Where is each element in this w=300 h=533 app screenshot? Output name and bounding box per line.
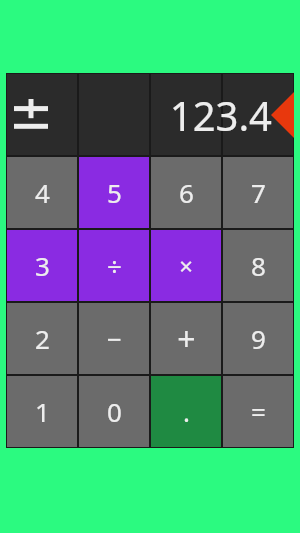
staticText: 6 [179,175,194,210]
staticText: 4 [35,175,50,210]
button[interactable]: 2 [7,303,77,374]
button[interactable]: + [151,303,221,374]
button[interactable]: 6 [151,157,221,228]
staticText: 123.4 [169,88,272,142]
staticText: 7 [251,175,266,210]
button[interactable]: 5 [79,157,149,228]
staticText: − [107,321,122,356]
button[interactable]: × [151,230,221,301]
staticText: × [179,249,193,282]
button[interactable]: 4 [7,157,77,228]
staticText: = [251,394,266,429]
button[interactable]: Backspace [271,92,294,138]
staticText: 1 [35,394,50,429]
staticText: 2 [35,321,50,356]
button[interactable]: = [223,376,293,447]
button[interactable]: 0 [79,376,149,447]
staticText: . [183,394,190,429]
button[interactable]: − [79,303,149,374]
button[interactable]: 3 [7,230,77,301]
button[interactable]: Plus minus sign toggle [6,74,78,155]
button[interactable]: 8 [223,230,293,301]
staticText: 8 [251,248,266,283]
button[interactable]: ÷ [79,230,149,301]
staticText: + [177,317,196,361]
button[interactable]: 9 [223,303,293,374]
staticText: 5 [107,175,122,210]
staticText: ÷ [107,248,122,283]
button[interactable]: 1 [7,376,77,447]
staticText: 3 [35,248,50,283]
staticText: 9 [251,321,266,356]
button[interactable]: . [151,376,221,447]
staticText: 0 [107,394,122,429]
button[interactable]: 7 [223,157,293,228]
